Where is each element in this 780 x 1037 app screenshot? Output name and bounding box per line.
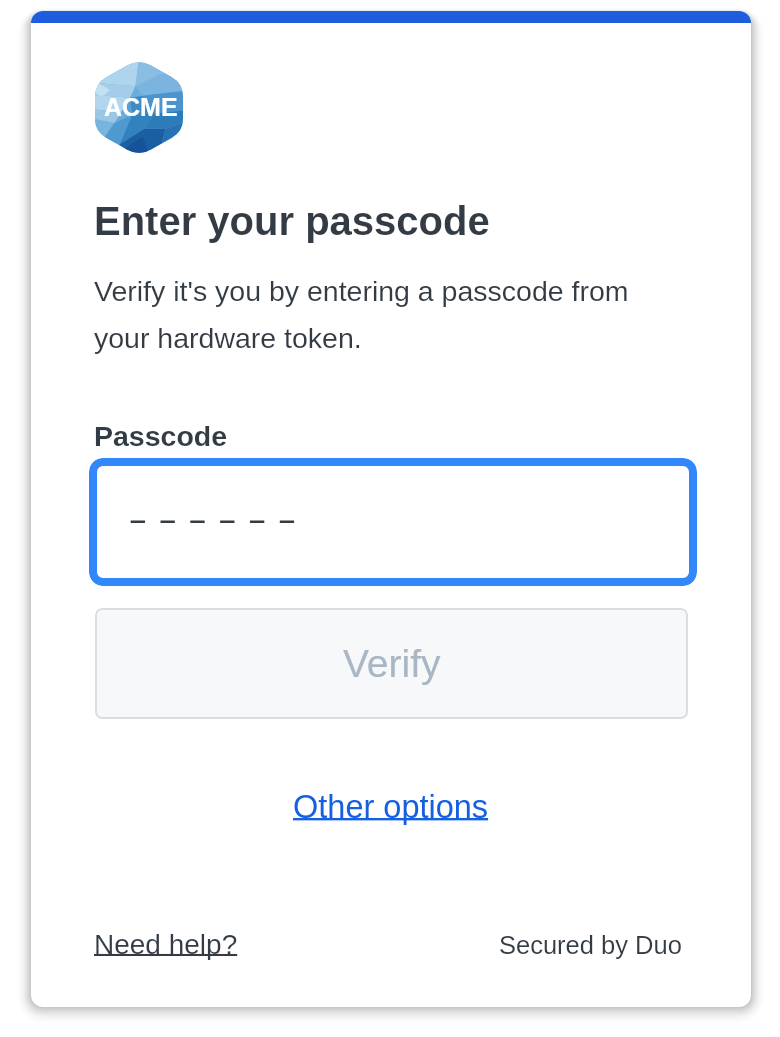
button[interactable]: Other options xyxy=(293,789,489,825)
button[interactable]: Need help? xyxy=(94,929,238,960)
staticText: Passcode xyxy=(94,420,228,452)
button[interactable]: Passcode input xyxy=(89,458,697,586)
staticText: Need help? xyxy=(94,929,238,960)
button[interactable]: Verify xyxy=(95,608,688,719)
staticText: Verify it's you by entering a passcode f… xyxy=(94,275,629,355)
staticText: Enter your passcode xyxy=(94,199,490,244)
staticText: ACME xyxy=(104,93,178,121)
staticText: Verify xyxy=(343,642,441,686)
staticText: Other options xyxy=(293,789,489,825)
staticText: Secured by Duo xyxy=(499,931,682,959)
